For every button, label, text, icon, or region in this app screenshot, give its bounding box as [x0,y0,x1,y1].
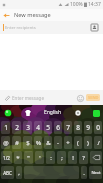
staticText: ' [39,154,41,162]
button[interactable]: SEND [86,94,100,101]
staticText: & [46,139,51,147]
staticText: ) [87,139,89,147]
staticText: New message [14,11,51,19]
button[interactable]: Emoji [75,93,85,103]
staticText: Next [91,170,101,176]
button[interactable]: , [16,166,22,179]
staticText: ( [77,139,79,147]
button[interactable]: Theme [4,109,12,117]
staticText: : [50,154,52,162]
staticText: Enter message [12,95,45,101]
button[interactable]: 3 [23,121,32,134]
button[interactable]: 2 [12,121,21,134]
button[interactable]: 1/2 [1,151,12,164]
staticText: English [44,109,62,116]
button[interactable]: / [94,136,102,149]
button[interactable]: 9 [84,121,92,134]
button[interactable]: ? [79,151,88,164]
button[interactable]: $ [23,136,32,149]
staticText: 0 [96,123,100,132]
button[interactable]: * [14,151,22,164]
staticText: + [66,139,70,147]
button[interactable]: Next [89,166,102,179]
button[interactable]: ABC [1,166,14,179]
staticText: . [83,169,85,177]
staticText: " [27,154,30,162]
button[interactable]: Back [0,9,12,21]
staticText: 5 [46,123,50,132]
button[interactable]: Emoji [74,109,82,117]
button[interactable] [24,166,79,179]
button[interactable]: ) [84,136,92,149]
button[interactable]: 7 [64,121,72,134]
button[interactable]: % [34,136,42,149]
staticText: 3 [26,123,30,132]
button[interactable]: @ [1,136,10,149]
staticText: 6 [56,123,60,132]
button[interactable]: - [54,136,62,149]
staticText: 2 [15,123,19,132]
button[interactable]: " [24,151,33,164]
button[interactable]: 0 [94,121,102,134]
button[interactable]: ; [57,151,66,164]
staticText: * [16,154,20,162]
button[interactable]: . [81,166,87,179]
staticText: 7 [66,123,70,132]
staticText: ? [82,154,85,162]
button[interactable]: 1 [1,121,10,134]
staticText: ! [72,154,74,162]
button[interactable]: 4 [34,121,42,134]
staticText: $ [26,139,30,147]
button[interactable]: ( [74,136,82,149]
staticText: / [97,139,100,147]
button[interactable]: Backspace [90,151,102,164]
staticText: % [36,139,41,147]
button[interactable]: Contacts [88,21,101,34]
staticText: SEND [88,95,99,100]
button[interactable]: & [44,136,52,149]
button[interactable]: ! [68,151,77,164]
button[interactable]: Apps [92,109,100,117]
button[interactable]: + [64,136,72,149]
staticText: Enter recipients [5,25,36,31]
staticText: ABC [3,170,12,176]
staticText: 8 [76,123,80,132]
button[interactable]: : [46,151,55,164]
staticText: 1 [4,123,8,132]
staticText: ; [61,154,63,162]
staticText: , [18,169,20,177]
staticText: 4 [36,123,40,132]
button[interactable]: 8 [74,121,82,134]
button[interactable]: 5 [44,121,52,134]
staticText: 100% [70,1,83,8]
staticText: 14:37 [88,1,101,8]
button[interactable]: Attach [2,93,11,102]
button[interactable]: Stickers [24,109,32,117]
button[interactable]: ' [35,151,44,164]
button[interactable]: 6 [54,121,62,134]
staticText: # [15,139,19,147]
button[interactable]: # [12,136,21,149]
staticText: 1/2 [3,155,10,161]
staticText: 9 [86,123,90,132]
staticText: - [57,139,59,147]
staticText: @ [3,139,9,147]
